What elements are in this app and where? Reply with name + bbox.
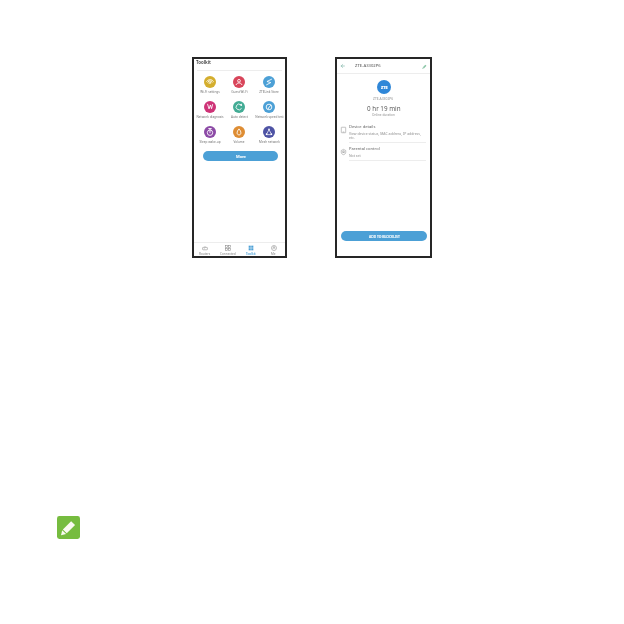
- staticText: Device details: [349, 124, 376, 130]
- button[interactable]: Routers: [194, 243, 216, 258]
- button[interactable]: Sleep wake-up: [195, 126, 224, 144]
- staticText: Guest Wi-Fi: [231, 90, 248, 94]
- staticText: ADD TO BLOCKLIST: [369, 234, 400, 239]
- button[interactable]: Guest Wi-Fi: [224, 76, 254, 94]
- button[interactable]: More: [203, 151, 278, 161]
- staticText: Volume: [233, 140, 245, 144]
- staticText: ZTELink Store: [259, 90, 279, 94]
- staticText: Toolkit: [196, 59, 211, 65]
- button[interactable]: Network speed test: [254, 101, 284, 119]
- button[interactable]: ZTELink Store: [254, 76, 284, 94]
- button[interactable]: Back: [340, 63, 346, 69]
- staticText: 0 hr 19 min: [367, 104, 401, 113]
- staticText: Wi-Fi settings: [200, 90, 220, 94]
- staticText: Parental control: [349, 146, 380, 152]
- staticText: Network diagnosis: [196, 115, 224, 119]
- button[interactable]: Toolkit: [239, 243, 262, 258]
- button[interactable]: Mesh network: [254, 126, 284, 144]
- button[interactable]: Connected: [216, 243, 239, 258]
- button[interactable]: Edit: [57, 516, 80, 539]
- button[interactable]: Rename device: [421, 63, 428, 70]
- button[interactable]: Volume: [224, 126, 254, 144]
- staticText: View device status, MAC address, IP addr…: [349, 131, 425, 140]
- staticText: Mesh network: [259, 140, 280, 144]
- staticText: More: [236, 154, 246, 159]
- staticText: ZTE-A3302P6: [355, 63, 381, 69]
- staticText: Me: [271, 252, 276, 256]
- staticText: Network speed test: [255, 115, 284, 119]
- staticText: ZTE: [381, 85, 388, 90]
- button[interactable]: Auto detect: [224, 101, 254, 119]
- button[interactable]: Me: [262, 243, 285, 258]
- staticText: Auto detect: [231, 115, 248, 119]
- button[interactable]: Network diagnosis: [195, 101, 224, 119]
- staticText: Routers: [199, 252, 211, 256]
- button[interactable]: Device details: [337, 124, 430, 143]
- button[interactable]: ADD TO BLOCKLIST: [341, 231, 427, 241]
- staticText: Connected: [220, 252, 236, 256]
- staticText: Not set: [349, 153, 361, 158]
- staticText: ZTE-A3302P6: [373, 96, 394, 100]
- button[interactable]: Wi-Fi settings: [195, 76, 224, 94]
- button[interactable]: Parental control: [337, 146, 430, 161]
- staticText: Online duration: [372, 113, 395, 117]
- staticText: Toolkit: [246, 252, 256, 256]
- staticText: Sleep wake-up: [199, 140, 221, 144]
